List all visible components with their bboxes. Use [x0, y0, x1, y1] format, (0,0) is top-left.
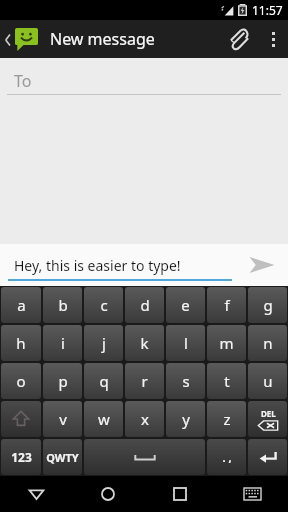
button[interactable]: m: [207, 325, 246, 361]
button[interactable]: y: [166, 401, 205, 437]
button[interactable]: z: [207, 401, 246, 437]
staticText: v: [59, 409, 67, 429]
staticText: w: [98, 409, 110, 429]
button[interactable]: . ,: [207, 439, 246, 475]
staticText: b: [58, 295, 68, 315]
staticText: d: [140, 295, 150, 315]
button[interactable]: w: [84, 401, 123, 437]
button[interactable]: j: [84, 325, 123, 361]
staticText: p: [58, 371, 68, 391]
button[interactable]: n: [248, 325, 287, 361]
button[interactable]: e: [166, 287, 205, 323]
button[interactable]: h: [1, 325, 41, 361]
button[interactable]: v: [43, 401, 82, 437]
staticText: a: [17, 295, 26, 315]
button[interactable]: k: [125, 325, 164, 361]
staticText: c: [100, 295, 108, 315]
button[interactable]: QWTY: [43, 439, 82, 475]
staticText: f: [224, 295, 230, 315]
button[interactable]: l: [166, 325, 205, 361]
staticText: i: [61, 333, 65, 353]
button[interactable]: b: [43, 287, 82, 323]
button[interactable]: Enter: [248, 439, 287, 475]
button[interactable]: d: [125, 287, 164, 323]
button[interactable]: More options: [258, 20, 288, 58]
staticText: s: [182, 371, 190, 391]
button[interactable]: c: [84, 287, 123, 323]
staticText: t: [224, 371, 230, 391]
button[interactable]: Space: [84, 439, 205, 475]
staticText: x: [141, 409, 149, 429]
button[interactable]: Back: [0, 28, 42, 51]
staticText: Hey, this is easier to type!: [14, 256, 181, 275]
button[interactable]: p: [43, 363, 82, 399]
button[interactable]: Send: [236, 244, 288, 286]
staticText: n: [263, 333, 273, 353]
button[interactable]: Shift: [1, 401, 41, 437]
staticText: y: [182, 409, 190, 429]
staticText: m: [219, 333, 234, 353]
button[interactable]: Home: [72, 476, 144, 512]
staticText: q: [99, 371, 109, 391]
button[interactable]: u: [248, 363, 287, 399]
staticText: . ,: [222, 450, 232, 465]
button[interactable]: r: [125, 363, 164, 399]
staticText: k: [140, 333, 149, 353]
staticText: r: [141, 371, 148, 391]
staticText: h: [16, 333, 26, 353]
staticText: u: [263, 371, 273, 391]
staticText: DEL: [261, 408, 276, 419]
button[interactable]: Keyboard: [216, 476, 288, 512]
staticText: o: [16, 371, 26, 391]
staticText: 11:57: [252, 2, 283, 18]
staticText: z: [223, 409, 231, 429]
button[interactable]: g: [248, 287, 287, 323]
button[interactable]: Delete: [248, 401, 287, 437]
button[interactable]: 123: [1, 439, 41, 475]
staticText: New message: [50, 28, 155, 50]
staticText: l: [184, 333, 188, 353]
staticText: QWTY: [46, 450, 79, 465]
staticText: 123: [11, 449, 32, 465]
button[interactable]: o: [1, 363, 41, 399]
button[interactable]: Recent apps: [144, 476, 216, 512]
button[interactable]: x: [125, 401, 164, 437]
button[interactable]: f: [207, 287, 246, 323]
button[interactable]: s: [166, 363, 205, 399]
button[interactable]: Attach: [218, 20, 258, 58]
button[interactable]: t: [207, 363, 246, 399]
staticText: e: [181, 295, 190, 315]
staticText: g: [263, 295, 273, 315]
staticText: j: [102, 333, 106, 353]
button[interactable]: q: [84, 363, 123, 399]
staticText: To: [14, 70, 32, 92]
button[interactable]: i: [43, 325, 82, 361]
button[interactable]: Back: [0, 476, 72, 512]
button[interactable]: a: [1, 287, 41, 323]
